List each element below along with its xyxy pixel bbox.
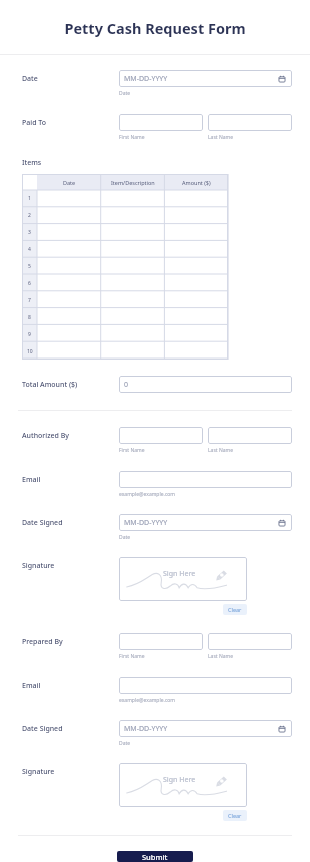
- button[interactable]: [165, 343, 228, 360]
- button[interactable]: [208, 633, 292, 650]
- staticText: 0: [124, 380, 129, 390]
- staticText: Date: [119, 90, 131, 97]
- button[interactable]: [37, 343, 101, 360]
- staticText: 6: [28, 280, 31, 287]
- button[interactable]: [119, 114, 203, 131]
- button[interactable]: [101, 224, 165, 241]
- button[interactable]: Clear: [223, 810, 247, 821]
- staticText: MM-DD-YYYY: [124, 724, 168, 734]
- button[interactable]: [37, 207, 101, 224]
- button[interactable]: [165, 224, 228, 241]
- button[interactable]: Open calendar: [277, 724, 287, 734]
- staticText: Date: [63, 179, 76, 186]
- staticText: Signature: [22, 767, 55, 777]
- button[interactable]: [101, 292, 165, 309]
- button[interactable]: [101, 309, 165, 326]
- button[interactable]: [101, 326, 165, 343]
- staticText: Items: [22, 158, 42, 168]
- button[interactable]: [101, 258, 165, 275]
- staticText: Last Name: [208, 447, 234, 454]
- staticText: Total Amount ($): [22, 380, 78, 390]
- button[interactable]: [165, 207, 228, 224]
- button[interactable]: [37, 292, 101, 309]
- staticText: 8: [28, 314, 31, 321]
- button[interactable]: [37, 224, 101, 241]
- button[interactable]: [119, 427, 203, 444]
- button[interactable]: 0: [119, 376, 292, 393]
- button[interactable]: [37, 241, 101, 258]
- button[interactable]: [101, 275, 165, 292]
- staticText: Prepared By: [22, 637, 63, 647]
- staticText: Item/Description: [111, 179, 155, 186]
- button[interactable]: [37, 309, 101, 326]
- button[interactable]: [165, 190, 228, 207]
- button[interactable]: Open calendar: [277, 74, 287, 84]
- button[interactable]: Submit: [117, 851, 193, 862]
- staticText: First Name: [119, 134, 145, 141]
- button[interactable]: [165, 326, 228, 343]
- staticText: First Name: [119, 653, 145, 660]
- staticText: Paid To: [22, 118, 47, 128]
- button[interactable]: [208, 427, 292, 444]
- button[interactable]: [208, 114, 292, 131]
- staticText: Amount ($): [182, 179, 211, 186]
- staticText: 9: [28, 331, 31, 338]
- button[interactable]: [165, 275, 228, 292]
- staticText: Date Signed: [22, 724, 63, 734]
- staticText: Date: [22, 74, 38, 84]
- staticText: 2: [28, 212, 31, 219]
- staticText: Authorized By: [22, 431, 69, 441]
- staticText: Date Signed: [22, 518, 63, 528]
- staticText: Email: [22, 681, 41, 691]
- staticText: Last Name: [208, 653, 234, 660]
- button[interactable]: [119, 677, 292, 694]
- button[interactable]: [119, 633, 203, 650]
- button[interactable]: [101, 207, 165, 224]
- button[interactable]: [165, 292, 228, 309]
- button[interactable]: Signature pad, sign here: [119, 763, 247, 807]
- staticText: Date: [119, 534, 131, 541]
- staticText: 7: [28, 297, 31, 304]
- button[interactable]: [165, 241, 228, 258]
- staticText: Last Name: [208, 134, 234, 141]
- staticText: Date: [119, 740, 131, 747]
- staticText: Clear: [228, 606, 242, 613]
- staticText: 3: [28, 229, 31, 236]
- staticText: Petty Cash Request Form: [0, 18, 310, 38]
- staticText: First Name: [119, 447, 145, 454]
- button[interactable]: [101, 343, 165, 360]
- button[interactable]: Signature pad, sign here: [119, 557, 247, 601]
- button[interactable]: [119, 471, 292, 488]
- staticText: MM-DD-YYYY: [124, 518, 168, 528]
- staticText: Submit: [142, 852, 168, 862]
- button[interactable]: [101, 190, 165, 207]
- button[interactable]: MM-DD-YYYY: [119, 70, 292, 87]
- staticText: Sign Here: [163, 569, 196, 579]
- staticText: Email: [22, 475, 41, 485]
- button[interactable]: [37, 326, 101, 343]
- staticText: 4: [28, 246, 31, 253]
- button[interactable]: MM-DD-YYYY: [119, 720, 292, 737]
- staticText: 10: [27, 348, 33, 355]
- button[interactable]: MM-DD-YYYY: [119, 514, 292, 531]
- staticText: 5: [28, 263, 31, 270]
- button[interactable]: [37, 258, 101, 275]
- staticText: Sign Here: [163, 775, 196, 785]
- button[interactable]: [165, 309, 228, 326]
- button[interactable]: Clear: [223, 604, 247, 615]
- staticText: example@example.com: [119, 697, 175, 704]
- staticText: 1: [28, 195, 31, 202]
- button[interactable]: [37, 275, 101, 292]
- staticText: MM-DD-YYYY: [124, 74, 168, 84]
- button[interactable]: [101, 241, 165, 258]
- staticText: Signature: [22, 561, 55, 571]
- button[interactable]: Open calendar: [277, 518, 287, 528]
- button[interactable]: [37, 190, 101, 207]
- staticText: example@example.com: [119, 491, 175, 498]
- button[interactable]: [165, 258, 228, 275]
- staticText: Clear: [228, 812, 242, 819]
